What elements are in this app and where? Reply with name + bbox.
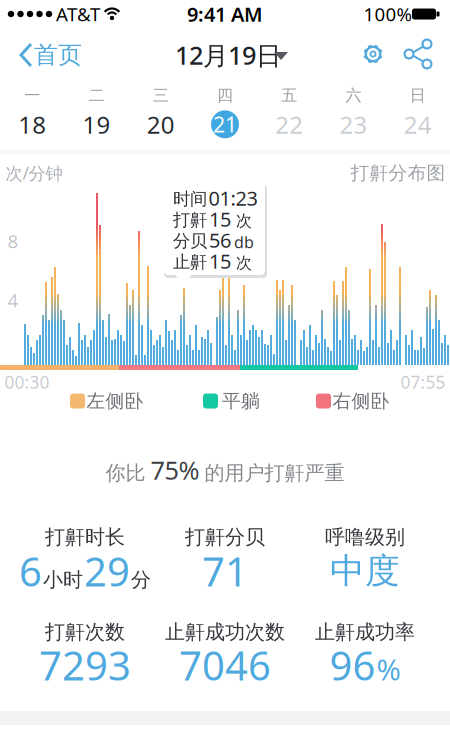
staticText: 23 xyxy=(340,108,368,140)
staticText: 次 xyxy=(236,253,252,273)
staticText: 01:23 xyxy=(208,185,257,211)
staticText: 12月19日 xyxy=(175,38,281,72)
button[interactable]: 首页 xyxy=(0,31,90,75)
staticText: 22 xyxy=(275,108,303,140)
staticText: db xyxy=(234,231,254,253)
staticText: 打鼾次数 xyxy=(45,620,125,644)
button[interactable]: 六 xyxy=(321,81,386,143)
staticText: 平躺 xyxy=(222,389,260,412)
staticText: 次 xyxy=(236,211,252,231)
staticText: 日 xyxy=(410,86,426,105)
staticText: 6 xyxy=(19,544,42,597)
button[interactable]: 四 xyxy=(193,81,257,143)
staticText: 小时 xyxy=(43,568,83,592)
staticText: 24 xyxy=(404,108,432,140)
staticText: 21 xyxy=(213,110,237,138)
staticText: 75% xyxy=(150,453,199,487)
staticText: 15 xyxy=(209,206,231,232)
staticText: 分贝 xyxy=(173,230,207,252)
staticText: 止鼾成功次数 xyxy=(165,620,285,644)
button[interactable] xyxy=(401,37,435,71)
staticText: 4 xyxy=(7,288,18,312)
staticText: 的用户打鼾严重 xyxy=(204,461,344,485)
staticText: 呼噜级别 xyxy=(325,525,405,549)
staticText: 打鼾分布图 xyxy=(350,161,445,184)
staticText: 19 xyxy=(82,108,110,140)
staticText: 止鼾 xyxy=(173,251,207,273)
staticText: 打鼾 xyxy=(173,209,207,231)
staticText: 7293 xyxy=(39,638,131,691)
staticText: 00:30 xyxy=(4,370,49,393)
staticText: 三 xyxy=(153,86,169,105)
staticText: % xyxy=(376,650,400,689)
staticText: 打鼾时长 xyxy=(45,525,125,549)
staticText: 一 xyxy=(24,86,40,105)
staticText: 止鼾成功率 xyxy=(315,620,415,644)
staticText: 左侧卧 xyxy=(86,389,143,412)
staticText: 8 xyxy=(7,229,18,253)
staticText: 96 xyxy=(329,638,375,691)
staticText: 15 xyxy=(209,248,231,274)
staticText: 四 xyxy=(217,86,233,105)
button[interactable]: 五 xyxy=(257,81,321,143)
staticText: 7046 xyxy=(179,638,271,691)
staticText: 你比 xyxy=(105,461,145,485)
staticText: 六 xyxy=(346,86,362,105)
button[interactable]: 一 xyxy=(0,81,64,143)
staticText: 五 xyxy=(281,86,297,105)
button[interactable]: 12月19日 xyxy=(173,33,293,77)
staticText: 29 xyxy=(84,544,130,597)
staticText: 中度 xyxy=(330,550,400,592)
staticText: AT&T xyxy=(56,2,100,26)
staticText: 18 xyxy=(18,108,46,140)
staticText: 右侧卧 xyxy=(332,389,389,412)
staticText: 9:41 AM xyxy=(187,1,263,27)
button[interactable]: 三 xyxy=(129,81,193,143)
button[interactable]: 二 xyxy=(64,81,129,143)
button[interactable] xyxy=(356,37,390,71)
staticText: 首页 xyxy=(34,40,82,70)
staticText: 次/分钟 xyxy=(5,161,62,184)
staticText: 07:55 xyxy=(400,370,445,393)
staticText: 时间 xyxy=(173,188,207,210)
staticText: 分 xyxy=(131,568,151,592)
staticText: 100% xyxy=(363,2,412,26)
staticText: 20 xyxy=(147,108,175,140)
staticText: 71 xyxy=(202,544,248,597)
staticText: 二 xyxy=(88,86,104,105)
staticText: 打鼾分贝 xyxy=(185,525,265,549)
button[interactable]: 日 xyxy=(386,81,450,143)
staticText: 56 xyxy=(209,227,231,253)
